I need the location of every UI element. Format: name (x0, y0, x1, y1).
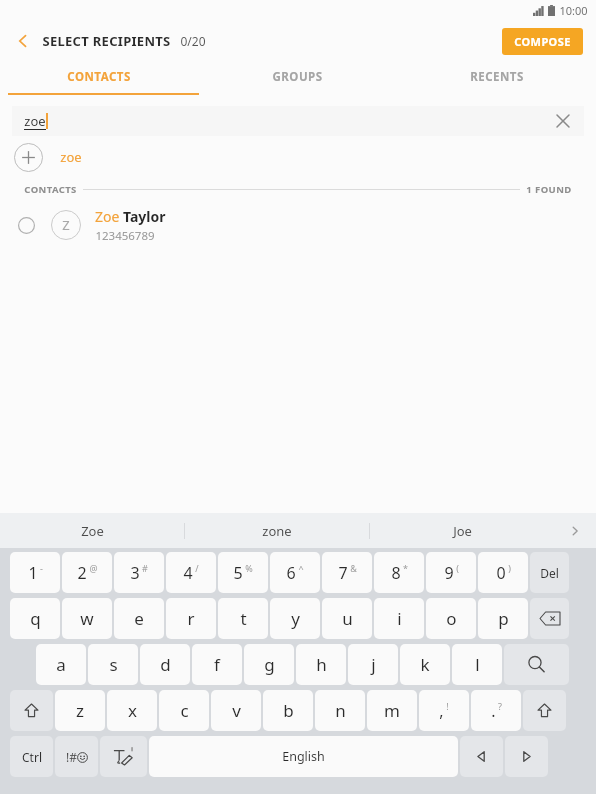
button[interactable]: 8 (374, 552, 424, 593)
button[interactable]: Joe (370, 513, 554, 548)
button[interactable]: Back (6, 24, 40, 58)
button[interactable]: n (315, 690, 365, 731)
staticText: 5 (233, 562, 243, 584)
button[interactable]: Space (149, 736, 458, 777)
staticText: 2 (77, 562, 87, 584)
button[interactable]: c (159, 690, 209, 731)
button[interactable]: z (55, 690, 105, 731)
staticText: i (397, 607, 402, 630)
staticText: Zoe Taylor (95, 207, 166, 226)
button[interactable]: a (36, 644, 86, 685)
staticText: Zoe (81, 522, 104, 540)
staticText: 1 (28, 562, 38, 584)
button[interactable]: GROUPS (198, 61, 397, 93)
button[interactable]: m (367, 690, 417, 731)
button[interactable]: w (62, 598, 112, 639)
button[interactable]: Handwriting and voice input (100, 736, 147, 777)
staticText: r (187, 607, 195, 630)
staticText: CONTACTS (24, 183, 77, 196)
button[interactable]: b (263, 690, 313, 731)
staticText: q (30, 607, 41, 630)
button[interactable]: g (244, 644, 294, 685)
button[interactable]: 6 (270, 552, 320, 593)
button[interactable]: h (296, 644, 346, 685)
button[interactable]: 4 (166, 552, 216, 593)
staticText: ! (446, 700, 449, 712)
button[interactable]: p (478, 598, 528, 639)
button[interactable]: Move cursor right (505, 736, 548, 777)
staticText: . (491, 700, 496, 722)
button[interactable]: k (400, 644, 450, 685)
button[interactable]: CONTACTS (0, 61, 198, 93)
button[interactable]: Zoe (0, 513, 184, 548)
staticText: 0 (496, 562, 506, 584)
button[interactable]: RECENTS (397, 61, 596, 93)
button[interactable]: o (426, 598, 476, 639)
staticText: a (56, 653, 66, 676)
button[interactable]: 2 (62, 552, 112, 593)
staticText: * (403, 562, 408, 574)
staticText: x (128, 699, 137, 722)
button[interactable]: d (140, 644, 190, 685)
staticText: v (232, 699, 241, 722)
staticText: Joe (453, 522, 472, 540)
button[interactable]: u (322, 598, 372, 639)
button[interactable]: s (88, 644, 138, 685)
staticText: n (335, 699, 346, 722)
button[interactable]: Move cursor left (460, 736, 503, 777)
button[interactable]: Delete (530, 552, 569, 593)
button[interactable]: t (218, 598, 268, 639)
button[interactable]: v (211, 690, 261, 731)
button[interactable]: j (348, 644, 398, 685)
button[interactable]: zoe (12, 106, 584, 136)
staticText: b (283, 699, 294, 722)
button[interactable]: 5 (218, 552, 268, 593)
button[interactable]: , (419, 690, 469, 731)
button[interactable]: 1 (10, 552, 60, 593)
staticText: & (350, 562, 357, 574)
button[interactable]: zoe (0, 136, 596, 178)
staticText: 8 (391, 562, 401, 584)
button[interactable]: zone (185, 513, 369, 548)
button[interactable]: Search (504, 644, 569, 685)
staticText: p (498, 607, 509, 630)
button[interactable]: y (270, 598, 320, 639)
button[interactable]: Symbols and emoji (55, 736, 98, 777)
button[interactable]: COMPOSE (502, 28, 583, 55)
staticText: w (80, 607, 94, 630)
button[interactable]: Shift (10, 690, 53, 731)
button[interactable]: . (471, 690, 521, 731)
button[interactable]: e (114, 598, 164, 639)
staticText: k (420, 653, 430, 676)
staticText: g (264, 653, 275, 676)
staticText: @ (89, 562, 98, 574)
button[interactable]: f (192, 644, 242, 685)
staticText: zone (262, 522, 292, 540)
staticText: ) (508, 562, 511, 574)
button[interactable]: Clear search (550, 108, 576, 134)
staticText: RECENTS (470, 69, 524, 85)
staticText: 1 FOUND (526, 183, 572, 196)
staticText: u (342, 607, 353, 630)
button[interactable]: l (452, 644, 502, 685)
button[interactable]: q (10, 598, 60, 639)
staticText: zoe (60, 148, 82, 166)
button[interactable]: Control (10, 736, 53, 777)
button[interactable]: i (374, 598, 424, 639)
staticText: j (371, 653, 376, 676)
button[interactable]: 3 (114, 552, 164, 593)
staticText: z (76, 699, 84, 722)
button[interactable]: More suggestions (554, 513, 596, 548)
button[interactable]: r (166, 598, 216, 639)
staticText: 0/20 (180, 33, 206, 49)
button[interactable]: Backspace (530, 598, 569, 639)
button[interactable]: Z (0, 200, 596, 250)
staticText: l (475, 653, 480, 676)
staticText: !# (66, 749, 77, 765)
button[interactable]: 0 (478, 552, 528, 593)
button[interactable]: 7 (322, 552, 372, 593)
button[interactable]: x (107, 690, 157, 731)
button[interactable]: Shift (523, 690, 566, 731)
staticText: d (160, 653, 171, 676)
button[interactable]: 9 (426, 552, 476, 593)
